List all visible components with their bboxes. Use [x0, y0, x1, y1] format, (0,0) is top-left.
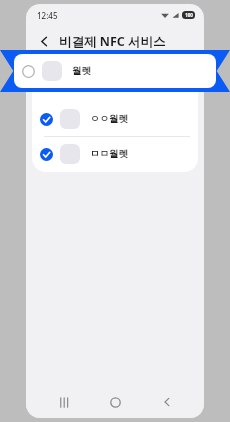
button[interactable]: Recents [50, 388, 78, 416]
button[interactable]: Home [101, 388, 129, 416]
button[interactable]: ㅁㅁ월렛 [32, 137, 198, 171]
button[interactable]: ㅇㅇ월렛 [32, 102, 198, 136]
staticText: 비결제 NFC 서비스 [59, 33, 166, 50]
staticText: 12:45 [37, 10, 58, 21]
staticText: 월렛 [72, 65, 91, 77]
button[interactable]: 월렛 [14, 54, 216, 88]
button[interactable]: Back [153, 388, 181, 416]
staticText: ㅁㅁ월렛 [90, 148, 128, 160]
staticText: 100 [185, 12, 193, 18]
button[interactable]: Back [34, 31, 54, 51]
staticText: ㅇㅇ월렛 [90, 113, 128, 125]
